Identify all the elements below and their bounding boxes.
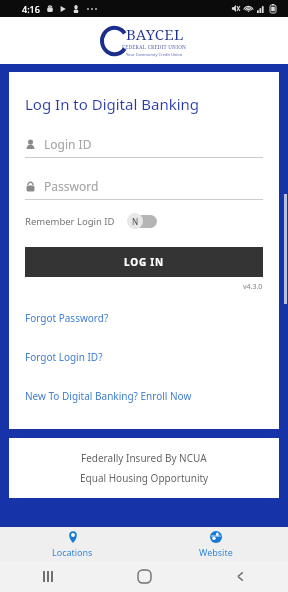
- staticText: BAYCEL: [126, 24, 184, 44]
- staticText: FEDERAL CREDIT UNION: [122, 44, 187, 51]
- button[interactable]: Password: [25, 178, 263, 200]
- staticText: Equal Housing Opportunity: [80, 471, 209, 485]
- staticText: Forgot Password?: [25, 311, 109, 325]
- button[interactable]: Remember Login ID: [25, 213, 157, 229]
- button[interactable]: LOG IN: [25, 247, 263, 277]
- staticText: v4.3.0: [243, 282, 263, 292]
- staticText: Your Community Credit Union: [126, 52, 183, 57]
- staticText: Forgot Login ID?: [25, 350, 103, 364]
- staticText: 4:16: [22, 3, 40, 15]
- button[interactable]: New To Digital Banking? Enroll Now: [25, 389, 192, 403]
- staticText: LOG IN: [124, 255, 164, 269]
- button[interactable]: Forgot Password?: [25, 311, 109, 325]
- button[interactable]: Website: [144, 527, 288, 561]
- staticText: Locations: [52, 546, 93, 558]
- staticText: New To Digital Banking? Enroll Now: [25, 389, 192, 403]
- button[interactable]: Forgot Login ID?: [25, 350, 103, 364]
- staticText: Login ID: [44, 136, 92, 152]
- staticText: Password: [44, 178, 99, 194]
- staticText: Federally Insured By NCUA: [81, 451, 207, 465]
- button[interactable]: Login ID: [25, 136, 263, 158]
- button[interactable]: Locations: [0, 527, 144, 561]
- staticText: Log In to Digital Banking: [25, 94, 200, 114]
- staticText: Website: [199, 546, 233, 558]
- staticText: N: [132, 216, 139, 227]
- staticText: Remember Login ID: [25, 215, 115, 228]
